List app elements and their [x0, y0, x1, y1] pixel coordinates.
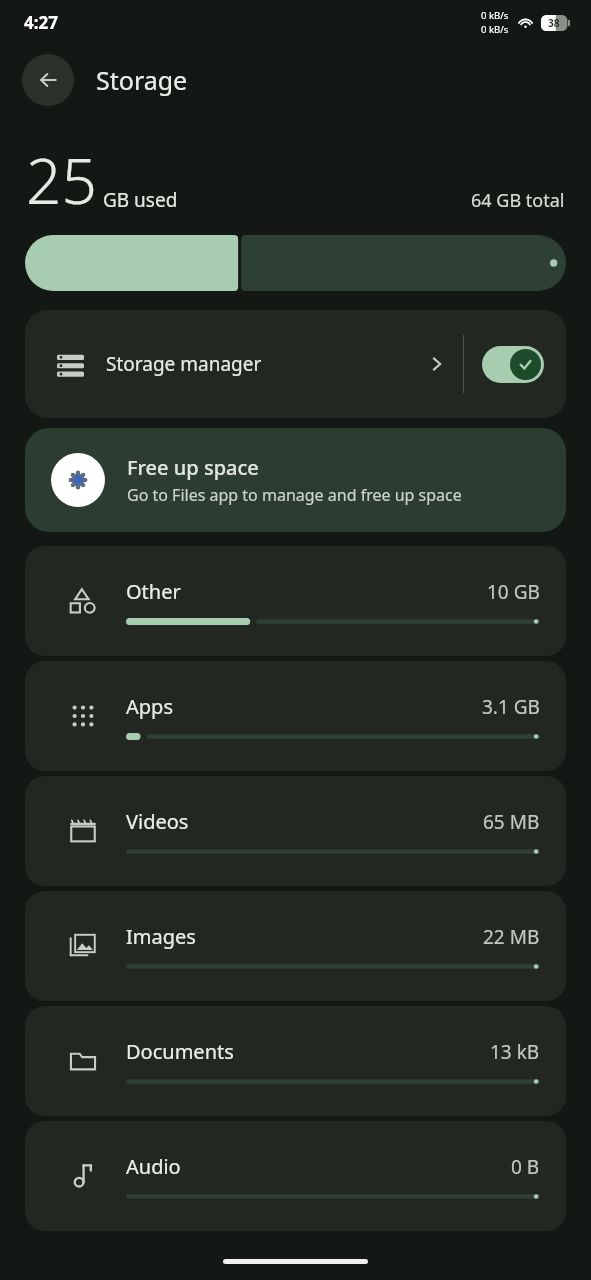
button[interactable]: Apps [25, 661, 566, 771]
staticText: 3.1 GB [482, 694, 540, 720]
staticText: 0 kB/s [481, 9, 509, 22]
button[interactable]: Images [25, 891, 566, 1001]
staticText: Other [126, 578, 181, 605]
staticText: 4:27 [24, 11, 58, 34]
button[interactable]: Storage manager toggle [482, 346, 544, 383]
staticText: Go to Files app to manage and free up sp… [127, 484, 462, 506]
staticText: Audio [126, 1153, 181, 1180]
button[interactable]: Storage manager [25, 310, 566, 418]
button[interactable]: Documents [25, 1006, 566, 1116]
button[interactable]: Free up space [25, 428, 566, 532]
staticText: 65 MB [483, 809, 540, 835]
staticText: Videos [126, 808, 189, 835]
staticText: 0 kB/s [481, 23, 509, 36]
staticText: Storage manager [106, 351, 262, 377]
button[interactable]: Other [25, 546, 566, 656]
staticText: Images [126, 923, 196, 950]
staticText: GB used [103, 187, 178, 213]
staticText: 64 GB total [471, 188, 565, 213]
staticText: Documents [126, 1038, 234, 1065]
button[interactable]: Audio [25, 1121, 566, 1231]
staticText: Free up space [127, 454, 259, 481]
staticText: Storage [96, 63, 188, 97]
staticText: 22 MB [483, 924, 540, 950]
button[interactable]: Back [22, 54, 74, 106]
button[interactable]: Videos [25, 776, 566, 886]
staticText: 25 [26, 138, 97, 222]
staticText: 10 GB [487, 579, 540, 605]
staticText: 38 [548, 16, 560, 30]
staticText: 0 B [511, 1154, 540, 1180]
staticText: Apps [126, 693, 173, 720]
staticText: 13 kB [490, 1039, 540, 1065]
